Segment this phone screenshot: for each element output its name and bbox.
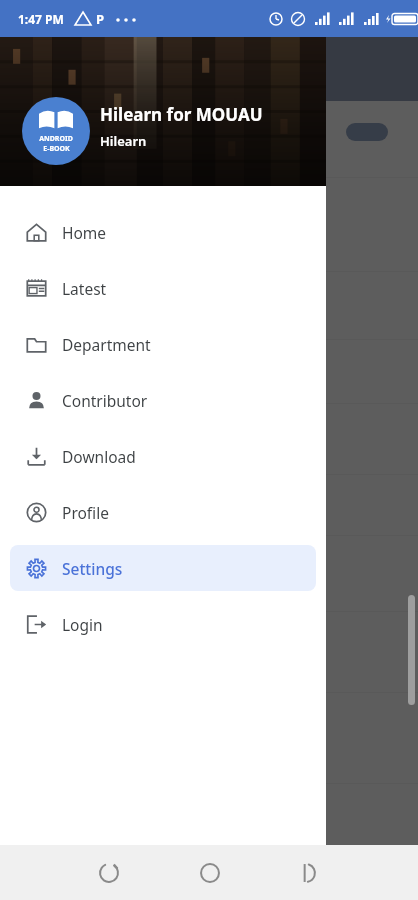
button[interactable]: Home [194,857,226,889]
staticText: Settings [62,558,123,579]
button[interactable]: Department [10,321,316,367]
staticText: Hilearn [100,132,147,150]
button[interactable]: Profile [10,489,316,535]
button[interactable]: App logo [22,97,90,165]
staticText: Contributor [62,390,148,411]
button[interactable]: Home [10,209,316,255]
button[interactable]: Contributor [10,377,316,423]
staticText: Login [62,614,103,635]
staticText: Department [62,334,151,355]
staticText: Hilearn for MOUAU [100,103,263,126]
staticText: ANDROID [39,134,73,144]
button[interactable]: Latest [10,265,316,311]
button[interactable]: Back [290,857,322,889]
staticText: P [96,10,105,28]
button[interactable]: Download [10,433,316,479]
staticText: E-BOOK [43,144,70,154]
button[interactable]: Recent apps [93,857,125,889]
staticText: Latest [62,278,107,299]
button[interactable]: Login [10,601,316,647]
staticText: Home [62,222,107,243]
staticText: Download [62,446,136,467]
staticText: Profile [62,502,109,523]
staticText: 1:47 PM [18,11,64,27]
button[interactable]: Toggle [346,123,388,141]
button[interactable]: Settings [10,545,316,591]
